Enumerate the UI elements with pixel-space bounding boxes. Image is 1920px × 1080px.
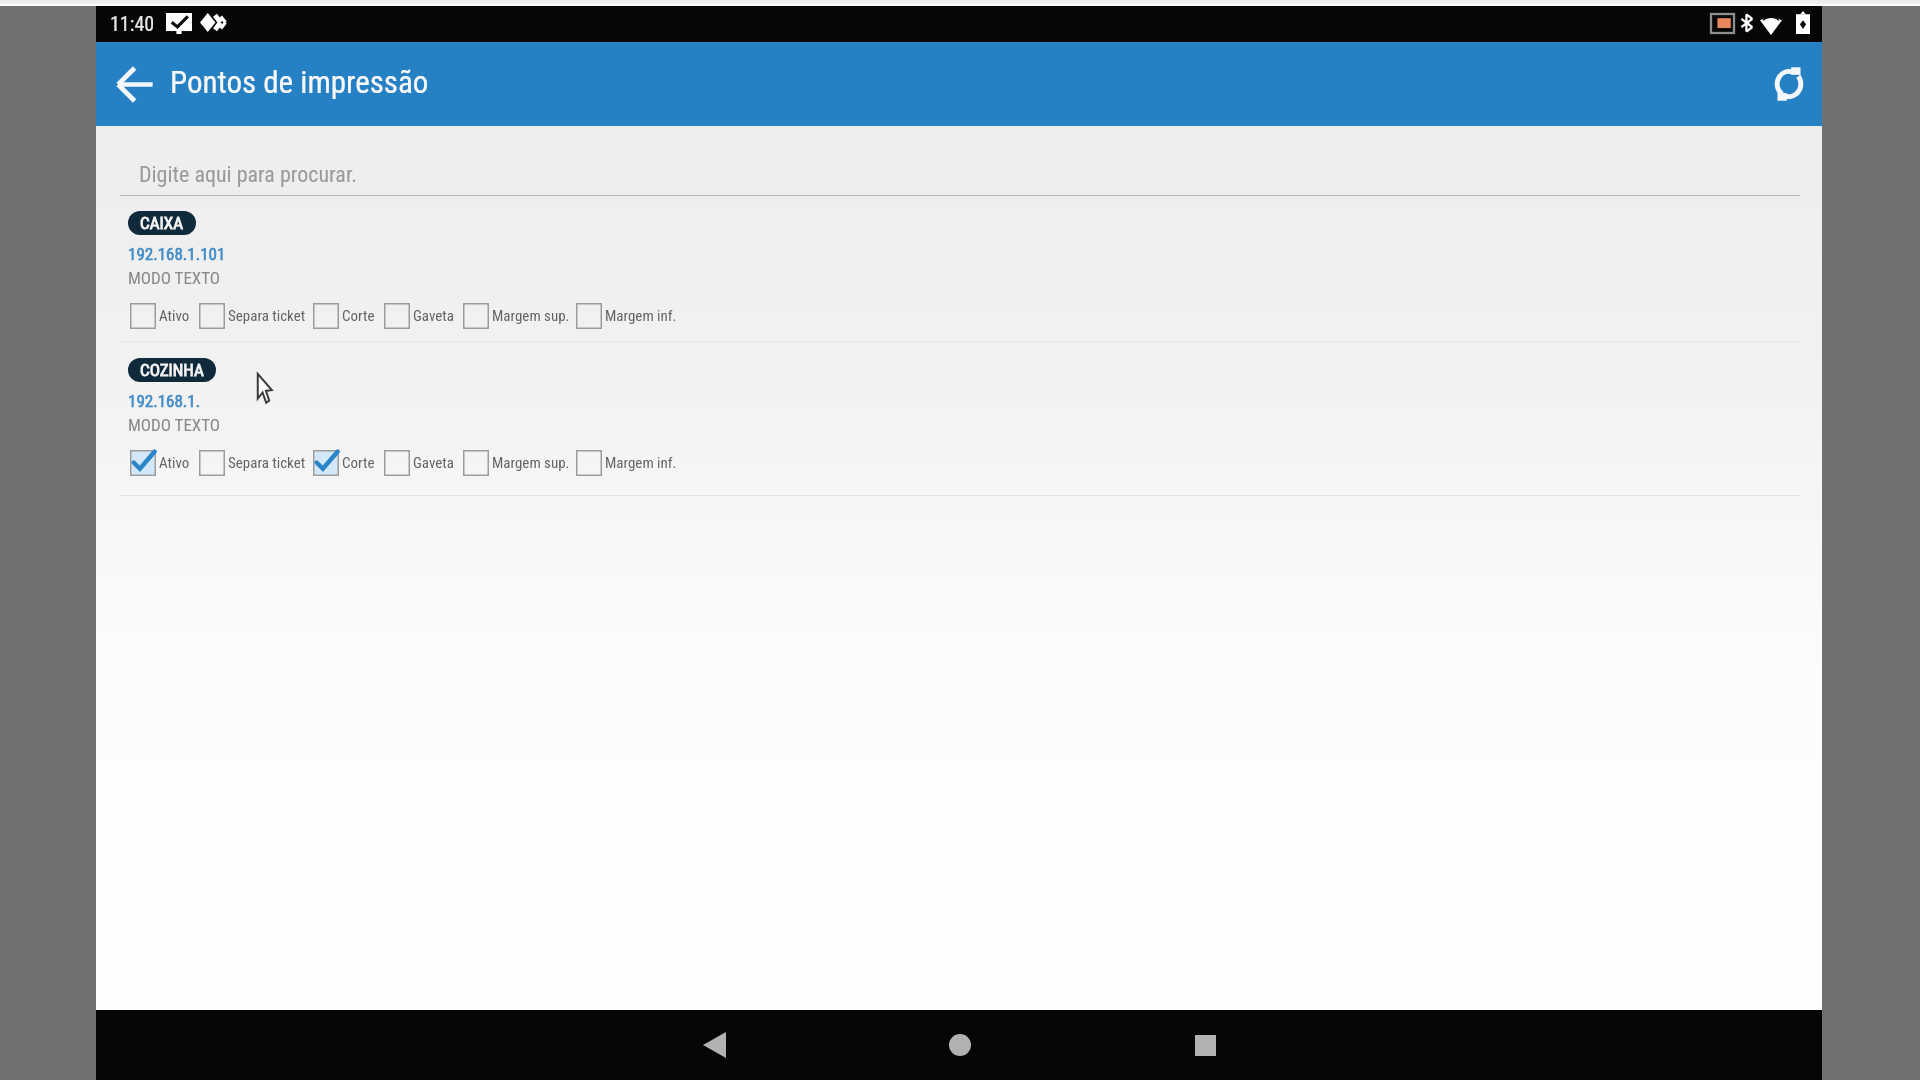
staticText: Ativo	[159, 454, 190, 472]
button[interactable]: Home	[936, 1021, 984, 1069]
button[interactable]: CAIXA	[96, 211, 1822, 341]
staticText: MODO TEXTO	[128, 268, 221, 288]
button[interactable]: Back	[690, 1021, 738, 1069]
button[interactable]: Margem inf.	[576, 303, 677, 329]
staticText: MODO TEXTO	[128, 415, 221, 435]
staticText: CAIXA	[140, 213, 184, 233]
staticText: Pontos de impressão	[170, 64, 429, 100]
staticText: Separa ticket	[228, 307, 306, 325]
staticText: Gaveta	[413, 454, 454, 472]
button[interactable]: Separa ticket	[199, 450, 306, 476]
button[interactable]: Margem inf.	[576, 450, 677, 476]
staticText: Gaveta	[413, 307, 454, 325]
button[interactable]: Back	[96, 45, 173, 123]
staticText: 11:40	[110, 12, 155, 35]
button[interactable]: Gaveta	[384, 303, 454, 329]
button[interactable]: Gaveta	[384, 450, 454, 476]
staticText: Corte	[342, 307, 375, 325]
staticText: COZINHA	[140, 360, 204, 380]
button[interactable]: Digite aqui para procurar.	[96, 126, 1822, 196]
button[interactable]: Corte	[313, 303, 375, 329]
staticText: 192.168.1.101	[128, 244, 226, 264]
button[interactable]: Separa ticket	[199, 303, 306, 329]
staticText: 192.168.1.	[128, 391, 201, 411]
button[interactable]: Margem sup.	[463, 450, 570, 476]
staticText: Margem sup.	[492, 307, 570, 325]
staticText: Ativo	[159, 307, 190, 325]
staticText: Corte	[342, 454, 375, 472]
button[interactable]: Ativo	[130, 303, 190, 329]
button[interactable]: Margem sup.	[463, 303, 570, 329]
staticText: Margem sup.	[492, 454, 570, 472]
button[interactable]: Ativo	[130, 450, 190, 476]
button[interactable]: COZINHA	[96, 358, 1822, 488]
staticText: Digite aqui para procurar.	[139, 162, 358, 188]
button[interactable]: Recent apps	[1181, 1021, 1229, 1069]
button[interactable]: Corte	[313, 450, 375, 476]
staticText: Margem inf.	[605, 454, 677, 472]
staticText: Margem inf.	[605, 307, 677, 325]
staticText: Separa ticket	[228, 454, 306, 472]
button[interactable]: Refresh	[1750, 45, 1828, 123]
